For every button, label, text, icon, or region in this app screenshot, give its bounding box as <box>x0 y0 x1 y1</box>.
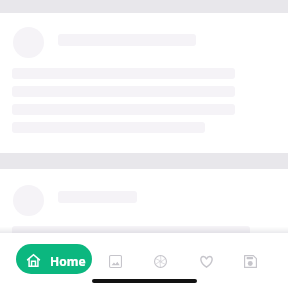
staticText: Home <box>50 253 86 269</box>
button[interactable]: Camera <box>146 247 174 275</box>
button[interactable]: Photos <box>101 247 129 275</box>
button[interactable]: Saved <box>236 247 264 275</box>
button[interactable]: Favorites <box>192 247 220 275</box>
button[interactable]: Home <box>16 244 92 274</box>
